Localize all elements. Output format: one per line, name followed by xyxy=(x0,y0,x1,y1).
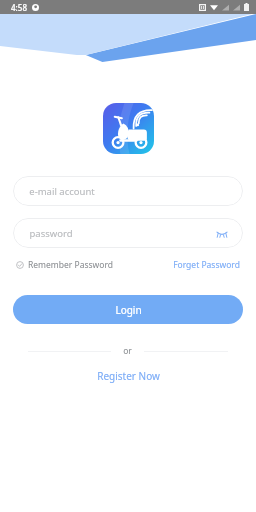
button[interactable]: Forget Password xyxy=(173,257,240,273)
button[interactable]: Remember Password xyxy=(16,257,113,273)
button[interactable]: Login xyxy=(13,295,243,324)
button[interactable]: Register Now xyxy=(93,365,164,387)
staticText: or xyxy=(123,345,132,357)
staticText: Login xyxy=(115,303,142,317)
staticText: 4:58 xyxy=(11,2,27,13)
button[interactable]: Show password xyxy=(215,226,229,240)
staticText: e-mail account xyxy=(29,185,95,198)
staticText: password xyxy=(29,227,73,240)
staticText: Forget Password xyxy=(173,259,240,271)
button[interactable]: password xyxy=(13,218,243,248)
button[interactable]: e-mail account xyxy=(13,176,243,206)
staticText: Remember Password xyxy=(28,259,113,271)
staticText: Register Now xyxy=(97,369,160,383)
